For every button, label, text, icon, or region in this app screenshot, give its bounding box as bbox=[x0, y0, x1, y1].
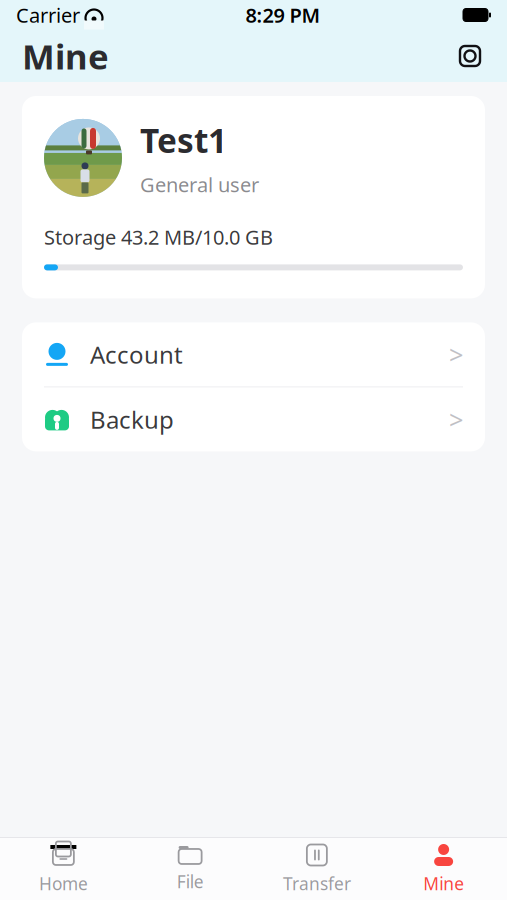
staticText: 8:29 PM bbox=[245, 2, 320, 28]
staticText: Account bbox=[90, 338, 183, 370]
button[interactable]: Account bbox=[22, 322, 485, 387]
staticText: Carrier bbox=[16, 2, 80, 28]
staticText: Transfer bbox=[283, 872, 351, 895]
staticText: Mine bbox=[423, 872, 464, 895]
button[interactable]: File bbox=[127, 839, 254, 899]
staticText: Home bbox=[39, 872, 88, 895]
button[interactable]: Transfer bbox=[253, 839, 380, 899]
button[interactable]: Settings bbox=[455, 41, 485, 71]
staticText: > bbox=[449, 338, 463, 371]
staticText: Test1 bbox=[140, 118, 227, 162]
staticText: File bbox=[177, 870, 204, 893]
staticText: General user bbox=[140, 171, 259, 198]
staticText: Mine bbox=[22, 33, 109, 79]
staticText: > bbox=[449, 403, 463, 436]
button[interactable]: Backup bbox=[22, 387, 485, 451]
button[interactable]: Home bbox=[0, 839, 127, 899]
button[interactable]: Mine bbox=[380, 839, 507, 899]
staticText: Storage 43.2 MB/10.0 GB bbox=[44, 224, 273, 250]
staticText: Backup bbox=[90, 403, 174, 435]
